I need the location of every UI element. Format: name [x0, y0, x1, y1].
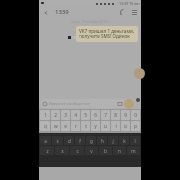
- button[interactable]: d: [64, 136, 74, 145]
- button[interactable]: j: [108, 136, 118, 145]
- staticText: u: [104, 123, 107, 130]
- staticText: x: [61, 148, 64, 154]
- staticText: 1339: [55, 8, 69, 16]
- staticText: 4: [74, 112, 77, 119]
- button[interactable]: z: [40, 146, 54, 155]
- staticText: t: [85, 123, 87, 130]
- button[interactable]: Attach file: [116, 100, 123, 107]
- staticText: l: [134, 138, 136, 144]
- button[interactable]: [41, 99, 135, 108]
- button[interactable]: s: [52, 136, 63, 145]
- button[interactable]: c: [70, 146, 84, 155]
- button[interactable]: t: [81, 121, 90, 131]
- staticText: y: [94, 123, 97, 130]
- button[interactable]: 0: [131, 110, 140, 120]
- staticText: 1: [44, 112, 47, 119]
- staticText: m: [131, 148, 136, 154]
- button[interactable]: h: [97, 136, 107, 145]
- staticText: VK7 пришел 1 деньгами, получите SMS! Оди…: [79, 28, 135, 40]
- button[interactable]: b: [99, 146, 112, 155]
- staticText: h: [101, 138, 104, 144]
- staticText: v: [90, 148, 93, 154]
- button[interactable]: 4: [71, 110, 80, 120]
- staticText: r: [75, 123, 77, 130]
- staticText: Введите сообщение: [49, 101, 90, 107]
- staticText: n: [118, 148, 121, 154]
- button[interactable]: 3: [61, 110, 70, 120]
- button[interactable]: Emoji: [41, 100, 48, 107]
- button[interactable]: p: [131, 121, 140, 131]
- button[interactable]: a: [40, 136, 51, 145]
- staticText: 7: [104, 112, 107, 119]
- button[interactable]: VK7 пришел 1 деньгами, получите SMS! Оди…: [76, 26, 138, 42]
- staticText: w: [54, 123, 58, 130]
- staticText: 8: [114, 112, 117, 119]
- staticText: d: [68, 138, 71, 144]
- staticText: 9: [124, 112, 127, 119]
- button[interactable]: 7: [101, 110, 110, 120]
- staticText: f: [79, 138, 81, 144]
- button[interactable]: 2: [51, 110, 60, 120]
- staticText: 2: [54, 112, 57, 119]
- button[interactable]: q: [40, 121, 50, 131]
- button[interactable]: k: [119, 136, 129, 145]
- button[interactable]: 6: [91, 110, 100, 120]
- button[interactable]: 9: [121, 110, 130, 120]
- staticText: s: [56, 138, 59, 144]
- staticText: 13:39 16 окт: [119, 1, 140, 6]
- staticText: a: [44, 138, 47, 144]
- staticText: b: [104, 148, 107, 154]
- button[interactable]: o: [121, 121, 130, 131]
- button[interactable]: r: [71, 121, 80, 131]
- staticText: 5: [84, 112, 87, 119]
- staticText: c: [76, 148, 79, 154]
- button[interactable]: Send: [124, 99, 134, 109]
- staticText: среда, 16 октября 2019 г.: [71, 20, 110, 24]
- staticText: o: [124, 123, 127, 130]
- staticText: i: [115, 123, 117, 130]
- button[interactable]: Call: [118, 7, 129, 18]
- button[interactable]: i: [111, 121, 120, 131]
- button[interactable]: x: [55, 146, 69, 155]
- button[interactable]: f: [75, 136, 85, 145]
- staticText: p: [134, 123, 137, 130]
- staticText: 13:39: [72, 35, 81, 40]
- button[interactable]: y: [91, 121, 100, 131]
- staticText: z: [46, 148, 49, 154]
- button[interactable]: e: [61, 121, 70, 131]
- button[interactable]: More options: [129, 7, 140, 18]
- button[interactable]: g: [86, 136, 96, 145]
- button[interactable]: u: [101, 121, 110, 131]
- staticText: 3: [64, 112, 67, 119]
- button[interactable]: 8: [111, 110, 120, 120]
- button[interactable]: m: [127, 146, 140, 155]
- staticText: 0: [134, 112, 137, 119]
- staticText: q: [44, 123, 47, 130]
- button[interactable]: Back: [41, 8, 50, 17]
- button[interactable]: Scroll to bottom: [134, 68, 145, 79]
- staticText: 6: [94, 112, 97, 119]
- button[interactable]: 1: [40, 110, 50, 120]
- button[interactable]: v: [85, 146, 98, 155]
- staticText: k: [123, 138, 126, 144]
- button[interactable]: l: [130, 136, 140, 145]
- staticText: e: [64, 123, 67, 130]
- button[interactable]: n: [113, 146, 126, 155]
- button[interactable]: 5: [81, 110, 90, 120]
- button[interactable]: w: [51, 121, 60, 131]
- staticText: j: [112, 138, 114, 144]
- staticText: g: [90, 138, 93, 144]
